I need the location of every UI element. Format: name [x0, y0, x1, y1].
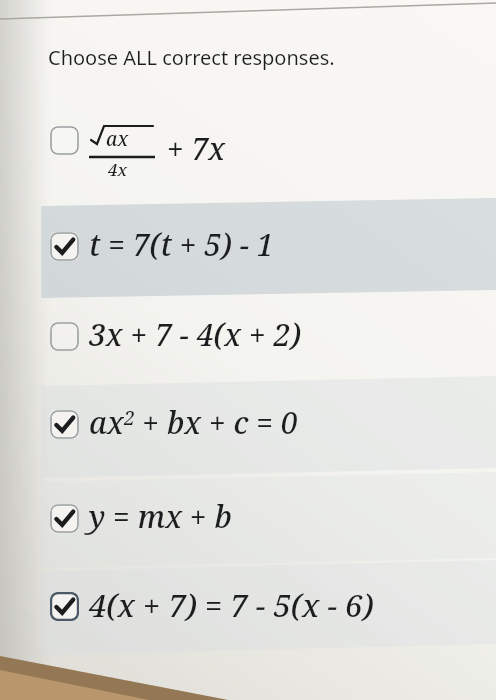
button[interactable]: Selected option [41, 494, 461, 556]
staticText: t = 7(t + 5) − 1 [89, 224, 274, 265]
button[interactable]: Unselected option [41, 112, 371, 192]
staticText: 4x [108, 158, 128, 181]
staticText: ax [106, 126, 129, 152]
button[interactable]: Selected option [41, 400, 461, 462]
staticText: Choose ALL correct responses. [48, 44, 335, 71]
staticText: + 7x [167, 128, 226, 169]
button[interactable]: Selected option [41, 582, 461, 644]
button[interactable]: Selected option [50, 504, 79, 533]
button[interactable]: Selected option [50, 410, 79, 439]
staticText: ax2 + bx + c = 0 [89, 402, 298, 443]
button[interactable]: Selected option [50, 592, 79, 621]
staticText: 4(x + 7) = 7 − 5(x − 6) [89, 584, 374, 626]
button[interactable]: Selected option [50, 232, 79, 261]
button[interactable]: Selected option [41, 222, 461, 284]
button[interactable]: Unselected option [50, 322, 79, 351]
button[interactable]: Unselected option [50, 126, 79, 155]
staticText: y = mx + b [89, 496, 232, 537]
button[interactable]: Unselected option [41, 312, 461, 374]
staticText: 3x + 7 − 4(x + 2) [89, 314, 302, 355]
